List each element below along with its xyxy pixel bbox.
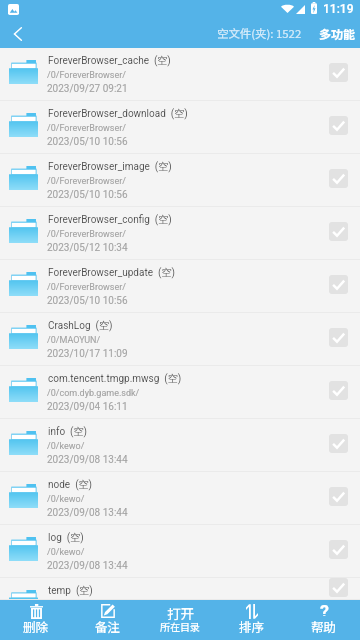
button[interactable]: Select item xyxy=(318,472,360,525)
button[interactable]: Select item xyxy=(318,578,360,600)
staticText: node (空) xyxy=(48,478,93,491)
button[interactable]: 备注 xyxy=(72,600,144,640)
staticText: 2023/09/08 13:44 xyxy=(47,613,128,625)
staticText: /0/kewo/ xyxy=(47,494,85,505)
button[interactable]: Select item xyxy=(318,419,360,472)
staticText: 11:19 xyxy=(323,2,354,16)
staticText: 空文件(夹): 1522 xyxy=(217,25,302,42)
staticText: CrashLog (空) xyxy=(48,319,113,332)
button[interactable]: log (空) xyxy=(0,525,360,578)
staticText: 2023/05/10 10:56 xyxy=(47,189,128,201)
staticText: 排序 xyxy=(239,617,265,635)
button[interactable]: Select item xyxy=(318,366,360,419)
staticText: 2023/05/12 10:34 xyxy=(47,242,128,254)
staticText: log (空) xyxy=(48,531,84,544)
button[interactable]: Select item xyxy=(318,207,360,260)
button[interactable]: 多功能 xyxy=(319,25,356,42)
staticText: info (空) xyxy=(48,425,87,438)
staticText: 2023/09/08 13:44 xyxy=(47,560,128,572)
staticText: 删除 xyxy=(23,617,49,635)
staticText: 2023/05/10 10:56 xyxy=(47,295,128,307)
staticText: ? xyxy=(320,601,329,616)
button[interactable]: ForeverBrowser_image (空) xyxy=(0,154,360,207)
staticText: /0/ForeverBrowser/ xyxy=(47,229,126,240)
staticText: ForeverBrowser_config (空) xyxy=(48,213,172,226)
staticText: /0/ForeverBrowser/ xyxy=(47,282,126,293)
button[interactable]: Select item xyxy=(318,154,360,207)
button[interactable]: Select item xyxy=(318,101,360,154)
staticText: 2023/09/08 13:44 xyxy=(47,507,128,519)
staticText: /0/ForeverBrowser/ xyxy=(47,176,126,187)
button[interactable]: 打开 xyxy=(144,600,216,640)
staticText: 2023/09/08 13:44 xyxy=(47,454,128,466)
staticText: 2023/10/17 11:09 xyxy=(47,348,128,360)
button[interactable]: 排序 xyxy=(216,600,288,640)
staticText: com.tencent.tmgp.mwsg (空) xyxy=(48,372,182,385)
staticText: /0/com.dyb.game.sdk/ xyxy=(47,388,140,399)
staticText: 多功能 xyxy=(319,25,356,42)
button[interactable]: 删除 xyxy=(0,600,72,640)
staticText: /0/kewo/ xyxy=(47,547,85,558)
button[interactable]: temp (空) xyxy=(0,578,360,600)
staticText: ForeverBrowser_image (空) xyxy=(48,160,172,173)
staticText: /0/kewo/ xyxy=(47,441,85,452)
button[interactable]: node (空) xyxy=(0,472,360,525)
staticText: /0/MAOYUN/ xyxy=(47,335,101,346)
button[interactable]: ForeverBrowser_update (空) xyxy=(0,260,360,313)
button[interactable]: Select item xyxy=(318,48,360,101)
button[interactable]: Select item xyxy=(318,525,360,578)
staticText: ForeverBrowser_update (空) xyxy=(48,266,175,279)
button[interactable]: Back xyxy=(0,22,36,48)
staticText: 2023/05/10 10:56 xyxy=(47,136,128,148)
button[interactable]: ForeverBrowser_config (空) xyxy=(0,207,360,260)
staticText: 所在目录 xyxy=(160,619,200,633)
staticText: ForeverBrowser_download (空) xyxy=(48,107,188,120)
button[interactable]: Select item xyxy=(318,260,360,313)
button[interactable]: com.tencent.tmgp.mwsg (空) xyxy=(0,366,360,419)
staticText: 2023/09/04 16:11 xyxy=(47,401,128,413)
button[interactable]: info (空) xyxy=(0,419,360,472)
button[interactable]: CrashLog (空) xyxy=(0,313,360,366)
staticText: 帮助 xyxy=(311,617,337,635)
staticText: temp (空) xyxy=(48,584,93,597)
button[interactable]: ForeverBrowser_download (空) xyxy=(0,101,360,154)
button[interactable]: ForeverBrowser_cache (空) xyxy=(0,48,360,101)
staticText: /0/ForeverBrowser/ xyxy=(47,70,126,81)
button[interactable]: Select item xyxy=(318,313,360,366)
staticText: 打开 xyxy=(167,603,194,623)
staticText: ForeverBrowser_cache (空) xyxy=(48,54,171,67)
staticText: 备注 xyxy=(95,617,121,635)
button[interactable]: ? xyxy=(288,600,360,640)
staticText: 2023/09/27 09:21 xyxy=(47,83,128,95)
staticText: /0/ForeverBrowser/ xyxy=(47,123,126,134)
